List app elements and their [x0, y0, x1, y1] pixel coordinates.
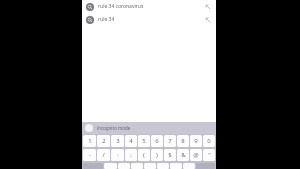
button[interactable]: Key: [170, 163, 182, 169]
button[interactable]: -: [83, 149, 96, 161]
staticText: /: [102, 151, 105, 159]
staticText: 0: [207, 137, 211, 145]
button[interactable]: 8: [177, 135, 189, 147]
button[interactable]: Key: [131, 163, 143, 169]
staticText: &: [181, 151, 186, 159]
staticText: -: [89, 151, 91, 159]
button[interactable]: 3: [111, 135, 124, 147]
button[interactable]: :: [111, 149, 124, 161]
button[interactable]: (: [138, 149, 150, 161]
button[interactable]: Key: [157, 163, 169, 169]
staticText: 1: [88, 137, 92, 145]
staticText: 7: [168, 137, 172, 145]
staticText: ): [156, 151, 158, 159]
button[interactable]: 5: [138, 135, 150, 147]
staticText: incognito mode: [97, 125, 131, 131]
button[interactable]: Insert suggestion: [203, 15, 212, 24]
staticText: ": [208, 151, 211, 159]
button[interactable]: Insert suggestion: [203, 2, 212, 11]
button[interactable]: 7: [164, 135, 176, 147]
staticText: rule 34: [98, 16, 115, 23]
button[interactable]: Key: [144, 163, 156, 169]
button[interactable]: 4: [125, 135, 137, 147]
button[interactable]: &: [177, 149, 189, 161]
staticText: 9: [194, 137, 198, 145]
staticText: $: [168, 151, 172, 159]
staticText: 6: [155, 137, 159, 145]
button[interactable]: @: [190, 149, 202, 161]
staticText: 2: [102, 137, 106, 145]
button[interactable]: ): [151, 149, 163, 161]
staticText: @: [193, 151, 199, 159]
button[interactable]: rule 34 coronavirus: [82, 0, 216, 13]
staticText: ;: [130, 151, 132, 159]
staticText: 4: [129, 137, 133, 145]
button[interactable]: Key: [183, 163, 195, 169]
button[interactable]: 6: [151, 135, 163, 147]
staticText: 3: [116, 137, 120, 145]
button[interactable]: ": [203, 149, 215, 161]
button[interactable]: Key: [118, 163, 130, 169]
button[interactable]: 1: [83, 135, 96, 147]
staticText: :: [117, 151, 119, 159]
button[interactable]: 0: [203, 135, 215, 147]
button[interactable]: /: [97, 149, 110, 161]
button[interactable]: $: [164, 149, 176, 161]
staticText: 5: [142, 137, 146, 145]
button[interactable]: rule 34: [82, 13, 216, 26]
button[interactable]: 2: [97, 135, 110, 147]
button[interactable]: 9: [190, 135, 202, 147]
button[interactable]: Key: [104, 163, 117, 169]
button[interactable]: incognito mode: [82, 122, 216, 134]
button[interactable]: ;: [125, 149, 137, 161]
staticText: (: [143, 151, 145, 159]
staticText: rule 34 coronavirus: [98, 3, 144, 10]
staticText: 8: [181, 137, 185, 145]
